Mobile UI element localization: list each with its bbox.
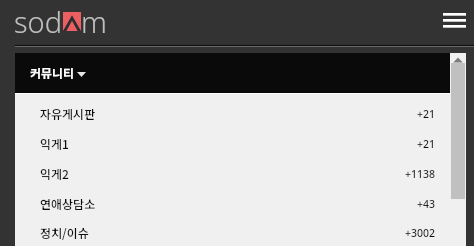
staticText: 연애상담소: [40, 195, 96, 212]
staticText: m: [81, 2, 107, 41]
button[interactable]: sod: [14, 2, 107, 41]
staticText: +21: [417, 137, 436, 151]
staticText: 익게2: [40, 165, 69, 182]
staticText: +43: [417, 197, 436, 211]
button[interactable]: 연애상담소: [15, 188, 450, 218]
button[interactable]: 커뮤니티: [15, 53, 450, 93]
staticText: 자유게시판: [40, 105, 96, 122]
staticText: +3002: [405, 226, 436, 240]
staticText: sod: [14, 2, 63, 41]
staticText: +21: [417, 107, 436, 121]
staticText: 정치/이슈: [40, 224, 89, 241]
staticText: 익게1: [40, 135, 69, 152]
staticText: 커뮤니티: [30, 64, 75, 81]
button[interactable]: 익게2: [15, 158, 450, 188]
staticText: +1138: [405, 167, 436, 181]
button[interactable]: 자유게시판: [15, 98, 450, 128]
button[interactable]: 익게1: [15, 128, 450, 158]
button[interactable]: Menu: [439, 5, 469, 37]
button[interactable]: Scroll up: [450, 53, 466, 69]
button[interactable]: 정치/이슈: [15, 218, 450, 246]
